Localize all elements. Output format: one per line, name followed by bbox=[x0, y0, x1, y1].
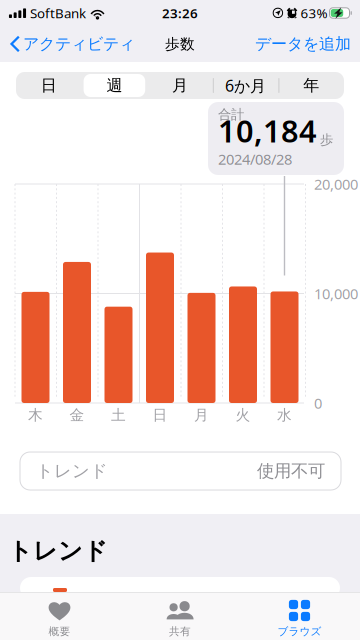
staticText: 木 bbox=[28, 406, 43, 424]
staticText: ブラウズ bbox=[277, 625, 321, 638]
button[interactable]: 6か月 bbox=[213, 72, 278, 99]
staticText: アクティビティ bbox=[23, 34, 135, 54]
staticText: 月 bbox=[194, 406, 209, 424]
button[interactable]: 年 bbox=[278, 72, 344, 99]
staticText: 歩数 bbox=[165, 35, 195, 53]
staticText: 歩 bbox=[320, 132, 333, 148]
staticText: 水 bbox=[277, 406, 292, 424]
staticText: 金 bbox=[69, 406, 84, 424]
staticText: 63% bbox=[300, 4, 327, 22]
staticText: 10,000 bbox=[314, 284, 358, 303]
button[interactable]: 月 bbox=[147, 72, 213, 99]
staticText: 月 bbox=[172, 76, 188, 95]
staticText: 2024/08/28 bbox=[218, 149, 292, 169]
staticText: 使用不可 bbox=[257, 460, 325, 482]
staticText: 日 bbox=[41, 76, 57, 95]
staticText: 年 bbox=[303, 76, 319, 95]
staticText: 20,000 bbox=[314, 174, 358, 194]
staticText: 週 bbox=[106, 76, 122, 95]
staticText: 概要 bbox=[48, 625, 70, 638]
button[interactable]: データを追加 bbox=[249, 28, 360, 60]
button[interactable]: 日 bbox=[16, 72, 82, 99]
staticText: 合計 bbox=[218, 106, 244, 123]
button[interactable]: 共有 bbox=[120, 592, 240, 640]
staticText: 23:26 bbox=[162, 4, 198, 22]
button[interactable]: アクティビティ bbox=[0, 28, 141, 60]
staticText: 日 bbox=[152, 406, 167, 424]
button[interactable]: トレンド bbox=[20, 452, 341, 490]
staticText: 10,184 bbox=[218, 110, 317, 151]
staticText: 0 bbox=[314, 393, 322, 413]
staticText: 土 bbox=[111, 406, 126, 424]
staticText: データを追加 bbox=[255, 34, 351, 54]
staticText: 6か月 bbox=[225, 75, 266, 96]
staticText: 火 bbox=[235, 406, 250, 424]
button[interactable]: 概要 bbox=[0, 592, 119, 640]
staticText: SoftBank bbox=[30, 4, 86, 22]
staticText: 共有 bbox=[169, 625, 191, 638]
staticText: トレンド bbox=[36, 460, 108, 482]
button[interactable]: ブラウズ bbox=[239, 592, 359, 640]
button[interactable]: 週 bbox=[82, 72, 147, 99]
staticText: トレンド bbox=[8, 536, 108, 566]
